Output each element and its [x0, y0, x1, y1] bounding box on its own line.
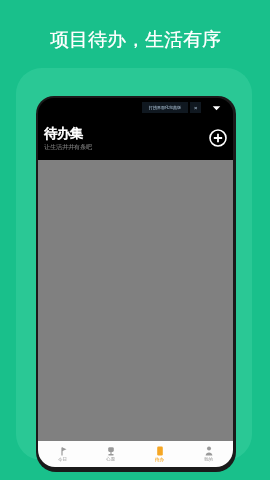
button[interactable]: 心愿 — [86, 446, 135, 463]
button[interactable]: Add — [209, 129, 227, 147]
staticText: 项目待办，生活有序 — [50, 28, 221, 52]
button[interactable]: 待办 — [135, 446, 184, 463]
staticText: × — [194, 104, 198, 112]
staticText: 让生活井井有条吧 — [44, 143, 92, 151]
staticText: 待办集 — [44, 125, 83, 141]
staticText: 待办 — [155, 457, 164, 463]
button[interactable]: Close — [190, 102, 201, 113]
staticText: 今日 — [58, 457, 67, 463]
button[interactable]: 我的 — [184, 446, 233, 463]
staticText: 打捞界面化完善版 — [149, 105, 181, 110]
staticText: 我的 — [204, 457, 213, 463]
button[interactable]: 今日 — [38, 446, 86, 463]
button[interactable]: 打捞界面化完善版 — [142, 102, 188, 113]
staticText: 心愿 — [106, 457, 115, 463]
